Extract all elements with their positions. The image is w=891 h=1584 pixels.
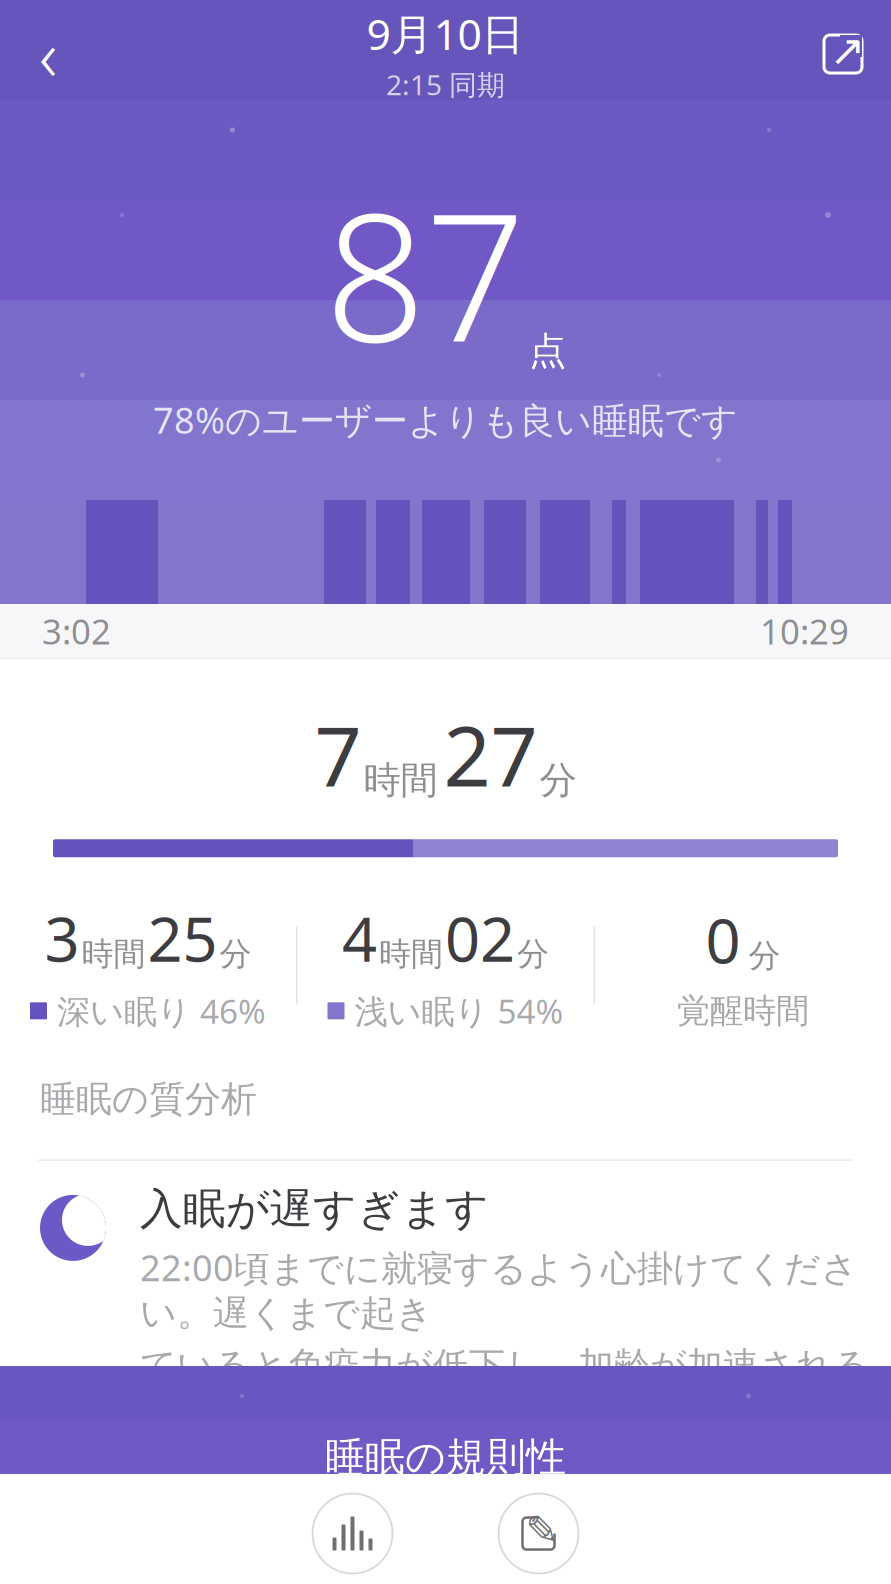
staticText: 3:02 <box>42 608 111 654</box>
staticText: ‹ <box>39 8 57 100</box>
staticText: 0 <box>705 899 740 980</box>
staticText: 時間 <box>81 934 145 974</box>
button[interactable]: ✎ <box>472 1487 604 1584</box>
button[interactable]: 履歴 <box>286 1487 418 1584</box>
staticText: 3 <box>44 897 79 979</box>
staticText: 時間 <box>363 757 437 803</box>
staticText: 4 <box>342 897 377 979</box>
staticText: ↗ <box>829 26 865 75</box>
staticText: 浅い眠り 54% <box>354 989 563 1033</box>
staticText: 25 <box>147 897 217 979</box>
staticText: 02 <box>445 897 515 979</box>
staticText: 7 <box>314 699 361 809</box>
staticText: 点 <box>529 328 566 374</box>
staticText: 2:15 同期 <box>386 66 505 103</box>
staticText: 分 <box>517 934 549 974</box>
button[interactable]: Back <box>0 11 96 97</box>
staticText: 9月10日 <box>366 5 524 62</box>
staticText: 27 <box>443 699 537 809</box>
staticText: 10:29 <box>760 608 849 654</box>
staticText: 入眠が遅すぎます <box>140 1183 489 1235</box>
staticText: 87 <box>325 156 525 390</box>
staticText: 分 <box>748 936 780 975</box>
staticText: 睡眠の質分析 <box>40 1077 257 1121</box>
staticText: 睡眠の規則性 <box>325 1433 566 1482</box>
staticText: 覚醒時間 <box>677 990 809 1031</box>
staticText: 深い眠り 46% <box>57 989 266 1033</box>
staticText: 22:00頃までに就寝するよう心掛けてください。遅くまで起き <box>140 1243 858 1335</box>
staticText: ていると免疫力が低下し、加齢が加速される恐れがあります。 <box>140 1343 870 1432</box>
staticText: 78%のユーザーよりも良い睡眠です <box>153 396 738 444</box>
staticText: 分 <box>219 934 251 974</box>
button[interactable]: Share <box>795 11 891 97</box>
staticText: 時間 <box>379 934 443 974</box>
staticText: 分 <box>539 757 576 803</box>
staticText: ✎ <box>525 1508 559 1553</box>
